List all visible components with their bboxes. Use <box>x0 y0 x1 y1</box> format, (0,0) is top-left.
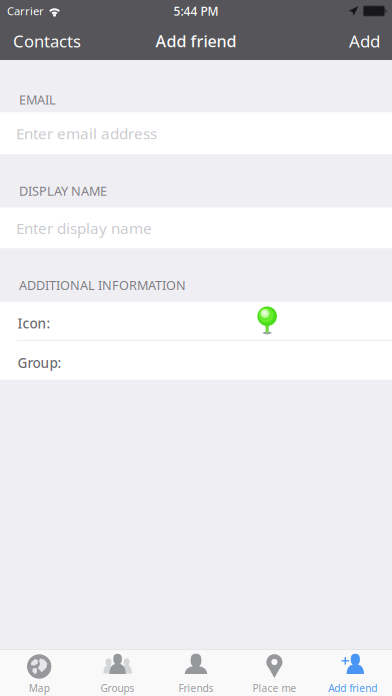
staticText: Group: <box>18 353 62 372</box>
button[interactable]: Groups <box>78 650 157 696</box>
button[interactable]: Place me <box>235 650 314 696</box>
button[interactable]: Add friend <box>314 650 392 696</box>
staticText: EMAIL <box>19 91 56 108</box>
staticText: Add friend <box>155 30 236 52</box>
staticText: Contacts <box>13 30 81 52</box>
button[interactable]: Enter email address <box>0 112 392 154</box>
staticText: Carrier <box>7 3 44 19</box>
staticText: Enter email address <box>16 123 157 144</box>
button[interactable]: Contacts <box>0 22 110 60</box>
button[interactable]: Add <box>312 22 392 60</box>
button[interactable]: Friends <box>157 650 235 696</box>
staticText: Map <box>29 681 50 695</box>
staticText: 5:44 PM <box>173 3 218 19</box>
staticText: Icon: <box>18 314 51 332</box>
staticText: Add friend <box>328 681 377 695</box>
button[interactable]: Icon: <box>0 302 392 341</box>
button[interactable]: Enter display name <box>0 207 392 248</box>
button[interactable]: Map <box>0 650 78 696</box>
staticText: Enter display name <box>16 218 152 238</box>
staticText: Groups <box>101 681 135 695</box>
staticText: DISPLAY NAME <box>19 182 107 200</box>
staticText: Place me <box>252 681 296 695</box>
button[interactable]: Group: <box>0 341 392 380</box>
staticText: Add <box>349 29 380 53</box>
staticText: ADDITIONAL INFORMATION <box>19 276 186 294</box>
staticText: Friends <box>178 681 213 695</box>
